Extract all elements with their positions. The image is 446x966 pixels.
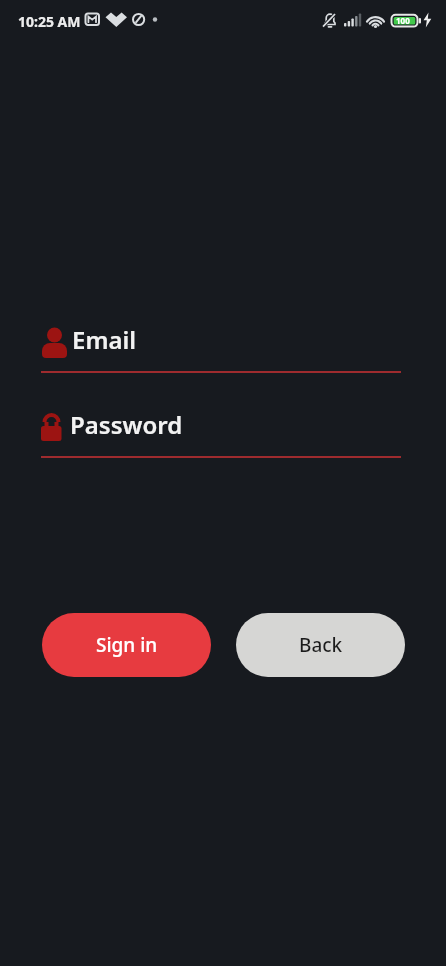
staticText: 10:25 AM (18, 12, 81, 31)
button[interactable]: Back (236, 613, 405, 677)
staticText: Email (72, 323, 137, 356)
button[interactable]: Sign in (42, 613, 211, 677)
button[interactable]: Email (41, 322, 401, 374)
staticText: Password (70, 408, 183, 441)
staticText: Back (299, 632, 343, 658)
button[interactable]: Password (41, 407, 401, 459)
staticText: 100 (396, 15, 410, 26)
staticText: Sign in (96, 632, 158, 658)
